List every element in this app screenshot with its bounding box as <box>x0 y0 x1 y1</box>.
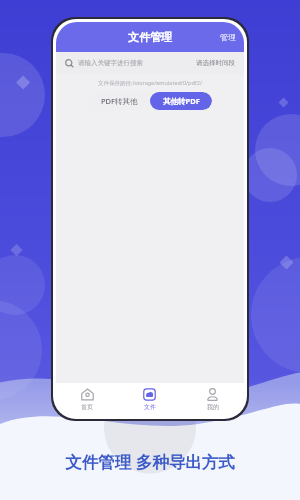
staticText: 首页 <box>81 403 93 411</box>
button[interactable]: 请输入关键字进行搜索 <box>78 59 192 67</box>
button[interactable]: 其他转PDF <box>150 92 212 110</box>
staticText: 文件管理 <box>128 30 172 44</box>
button[interactable]: 首页 <box>56 383 118 416</box>
staticText: 我的 <box>207 403 219 411</box>
staticText: 文件保存路径:/storage/emulated/0/pdf2/ <box>98 79 202 87</box>
staticText: 文件 <box>144 403 156 411</box>
staticText: PDF转其他 <box>101 96 138 106</box>
button[interactable]: 管理 <box>212 26 244 48</box>
button[interactable]: 请选择时间段 <box>192 59 235 67</box>
staticText: 其他转PDF <box>163 96 200 106</box>
staticText: 管理 <box>220 32 236 42</box>
button[interactable]: PDF转其他 <box>88 92 150 110</box>
other: Search <box>65 59 74 68</box>
staticText: 请输入关键字进行搜索 <box>78 59 143 67</box>
staticText: 文件管理 多种导出方式 <box>0 450 300 473</box>
staticText: 请选择时间段 <box>196 59 235 67</box>
button[interactable]: 文件 <box>118 383 181 416</box>
button[interactable]: 我的 <box>181 383 244 416</box>
